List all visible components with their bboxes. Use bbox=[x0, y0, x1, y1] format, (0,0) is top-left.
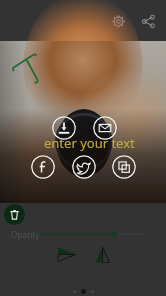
button[interactable]: Delete bbox=[4, 204, 25, 225]
button[interactable]: Flip horizontal bbox=[56, 244, 77, 265]
staticText: enter your text bbox=[44, 134, 135, 152]
button[interactable]: Twitter bbox=[72, 155, 96, 179]
button[interactable]: Share bbox=[135, 8, 161, 34]
button[interactable]: Flip vertical bbox=[92, 244, 113, 265]
button[interactable]: Settings bbox=[105, 8, 131, 34]
button[interactable]: Opacity slider bbox=[38, 227, 148, 241]
button[interactable]: Email bbox=[93, 116, 117, 140]
button[interactable]: Download bbox=[52, 116, 76, 140]
button[interactable]: Copy bbox=[112, 155, 136, 179]
staticText: Opacity bbox=[11, 229, 40, 240]
button[interactable]: Facebook bbox=[31, 155, 55, 179]
